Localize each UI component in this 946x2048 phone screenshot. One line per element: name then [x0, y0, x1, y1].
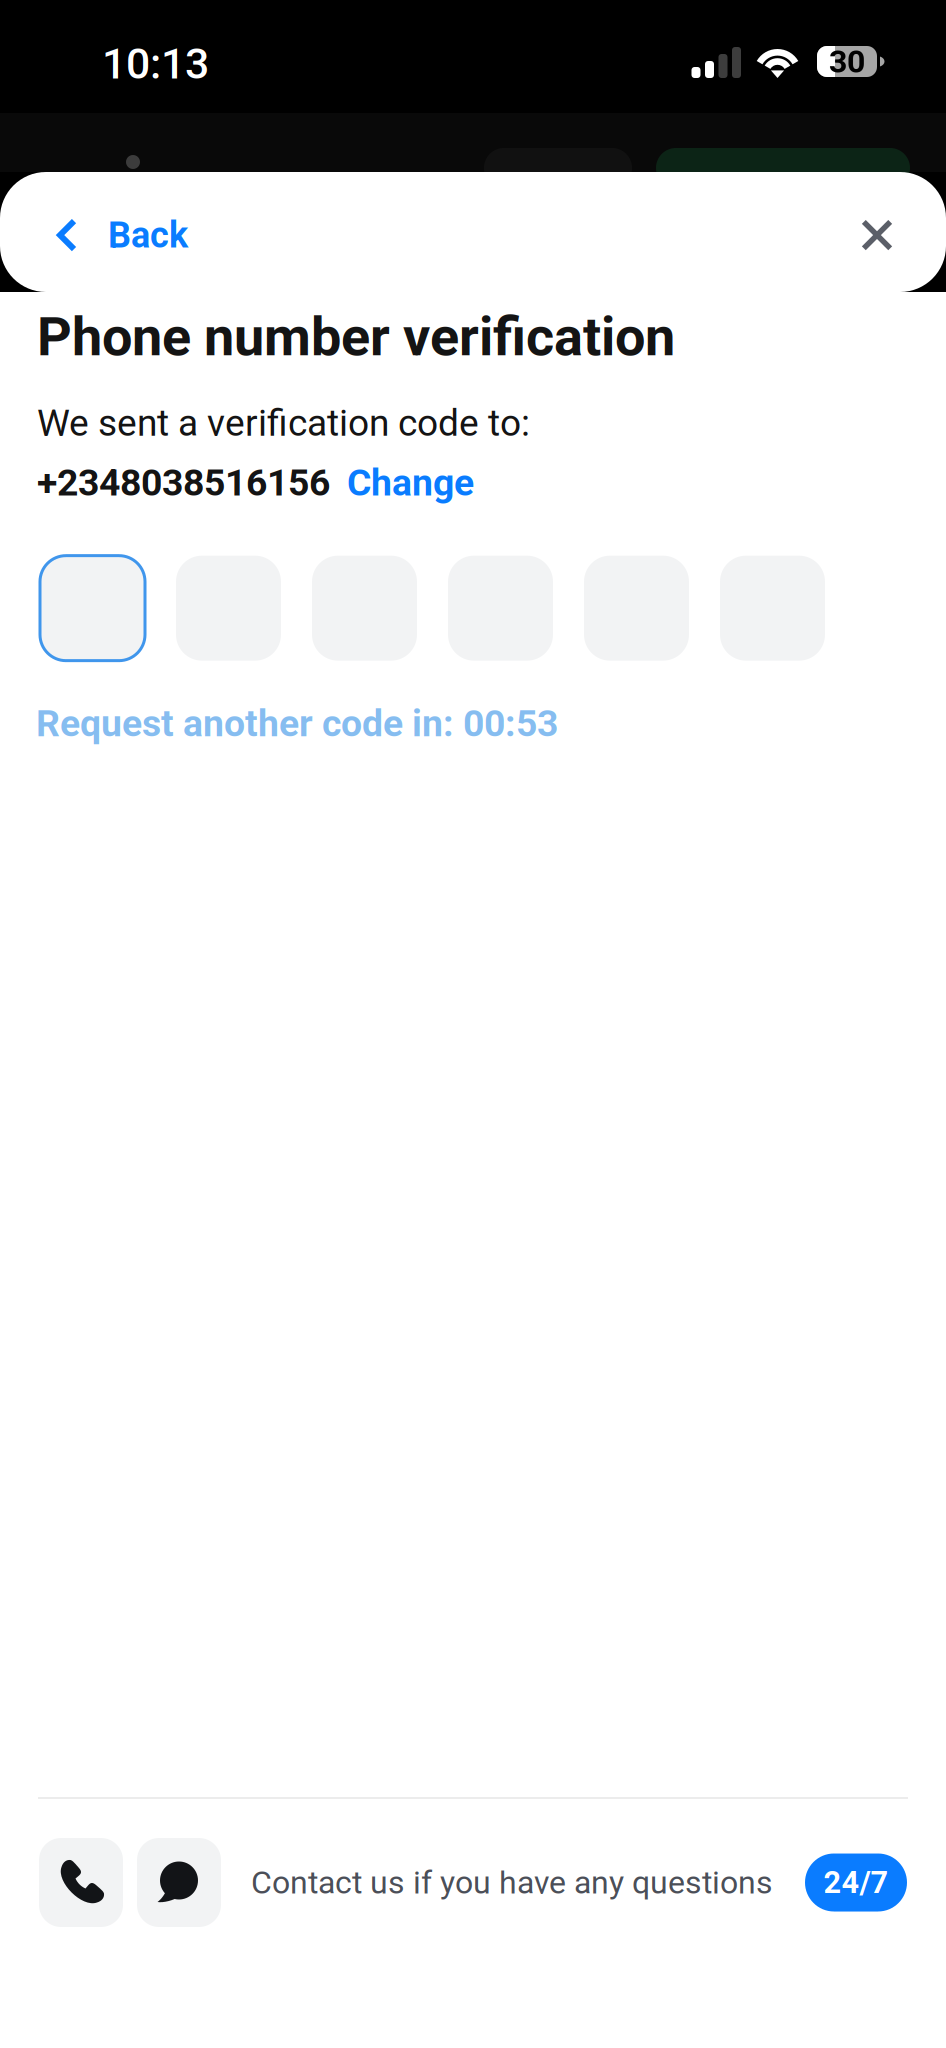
staticText: +2348038516156	[37, 461, 330, 505]
button[interactable]: 24/7	[805, 1853, 907, 1911]
button[interactable]: Close	[824, 199, 946, 271]
staticText: 24/7	[823, 1864, 888, 1900]
staticText: We sent a verification code to:	[37, 401, 530, 445]
staticText: Phone number verification	[37, 305, 675, 368]
button[interactable]: Call support	[39, 1838, 123, 1927]
staticText: Change	[347, 461, 474, 505]
staticText: Request another code in: 00:53	[36, 702, 558, 745]
button[interactable]: Chat with support	[137, 1838, 221, 1927]
button[interactable]: Change	[330, 457, 474, 509]
button[interactable]: Back	[0, 196, 212, 274]
staticText: Contact us if you have any questions	[251, 1864, 773, 1901]
staticText: 30	[829, 43, 865, 80]
staticText: Back	[108, 214, 188, 256]
staticText: 10:13	[102, 39, 209, 89]
